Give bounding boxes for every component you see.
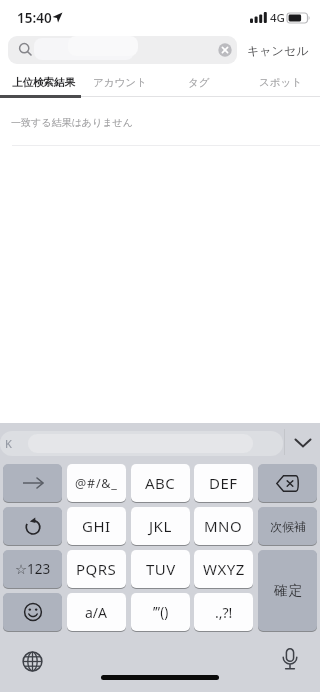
staticText: a/A [85, 603, 108, 622]
staticText: ☆123 [15, 560, 51, 578]
staticText: スポット [259, 76, 302, 89]
button[interactable]: @#/&_ [67, 464, 126, 502]
staticText: 15:40 [17, 9, 52, 27]
button[interactable] [8, 36, 237, 64]
button[interactable] [286, 429, 320, 457]
button[interactable]: DEF [194, 464, 253, 502]
button[interactable]: ABC [131, 464, 190, 502]
button[interactable] [270, 640, 310, 680]
staticText: 一致する結果はありません [11, 116, 133, 129]
staticText: K [5, 436, 12, 451]
staticText: MNO [204, 516, 243, 536]
staticText: JKL [149, 516, 172, 536]
button[interactable]: タグ [178, 70, 220, 95]
staticText: ’”() [153, 603, 169, 621]
button[interactable]: WXYZ [194, 550, 253, 588]
staticText: 次候補 [270, 519, 306, 534]
button[interactable]: 次候補 [258, 507, 317, 545]
staticText: キャンセル [247, 43, 309, 58]
button[interactable]: JKL [131, 507, 190, 545]
staticText: 上位検索結果 [12, 76, 75, 89]
staticText: WXYZ [203, 559, 245, 579]
staticText: DEF [209, 473, 238, 493]
staticText: タグ [188, 76, 210, 89]
button[interactable] [3, 464, 62, 502]
button[interactable]: アカウント [88, 70, 152, 95]
button[interactable]: .,?! [194, 593, 253, 631]
button[interactable]: PQRS [67, 550, 126, 588]
button[interactable]: MNO [194, 507, 253, 545]
button[interactable]: TUV [131, 550, 190, 588]
staticText: PQRS [76, 559, 117, 579]
staticText: .,?! [215, 603, 233, 622]
button[interactable]: ’”() [131, 593, 190, 631]
button[interactable] [258, 464, 317, 502]
button[interactable]: スポット [254, 70, 306, 95]
button[interactable] [3, 507, 62, 545]
staticText: 4G [270, 10, 285, 26]
staticText: @#/&_ [75, 475, 118, 492]
staticText: TUV [146, 559, 176, 579]
staticText: 確定 [273, 582, 303, 599]
button[interactable]: ☆123 [3, 550, 62, 588]
button[interactable]: 確定 [258, 550, 317, 631]
button[interactable]: キャンセル [242, 36, 314, 64]
staticText: ABC [145, 473, 176, 493]
button[interactable] [13, 642, 51, 680]
button[interactable]: a/A [67, 593, 126, 631]
staticText: GHI [82, 516, 111, 536]
button[interactable] [3, 593, 62, 631]
button[interactable]: GHI [67, 507, 126, 545]
button[interactable]: 上位検索結果 [0, 70, 86, 95]
staticText: アカウント [93, 76, 147, 89]
